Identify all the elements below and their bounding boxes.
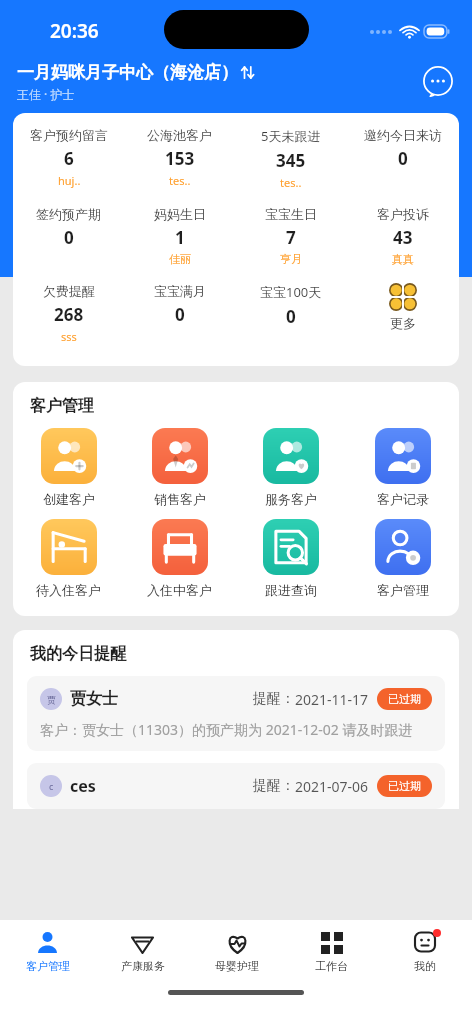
staticText: 贾 [47,694,56,705]
staticText: 153 [165,147,195,170]
staticText: 母婴护理 [215,959,259,973]
staticText: 邀约今日来访 [364,127,442,143]
staticText: 20:36 [50,18,99,44]
staticText: 2021-07-06 [295,777,369,796]
button[interactable]: 工作台 [284,920,378,982]
staticText: 宝宝100天 [260,283,322,301]
button[interactable]: 入住中客户 [124,519,235,598]
staticText: 客户管理 [30,396,94,416]
button[interactable]: 创建客户 [13,428,124,507]
staticText: 更多 [390,315,416,331]
button[interactable]: 产康服务 [95,920,190,982]
staticText: 提醒： [253,777,295,795]
staticText: 妈妈生日 [154,206,206,222]
staticText: 43 [393,226,413,249]
staticText: 亨月 [280,252,302,266]
staticText: 宝宝满月 [154,283,206,299]
staticText: ces [70,775,96,797]
staticText: 客户预约留言 [30,127,108,143]
button[interactable]: 公海池客户 [147,127,212,188]
button[interactable]: 销售客户 [124,428,235,507]
staticText: 2021-11-17 [295,690,369,709]
button[interactable]: 贾 [27,676,445,751]
button[interactable]: 签约预产期 [36,206,101,267]
staticText: 一月妈咪月子中心（海沧店） [17,62,238,83]
staticText: 已过期 [388,692,421,706]
staticText: 客户投诉 [377,206,429,222]
staticText: 服务客户 [265,491,317,507]
staticText: 提醒： [253,690,295,708]
staticText: 欠费提醒 [43,283,95,299]
staticText: 0 [286,305,296,328]
staticText: sss [61,329,77,344]
button[interactable]: 欠费提醒 [43,283,95,344]
button[interactable]: c [27,763,445,809]
button[interactable]: 母婴护理 [190,920,284,982]
button[interactable]: 妈妈生日 [154,206,206,266]
staticText: 客户：贾女士（11303）的预产期为 2021-12-02 请及时跟进 [40,720,413,739]
staticText: 1 [175,226,185,249]
staticText: 客户管理 [26,959,70,973]
button[interactable]: 宝宝100天 [260,283,322,346]
staticText: 客户记录 [377,491,429,507]
button[interactable]: 5天未跟进 [261,127,321,190]
staticText: 345 [276,149,306,172]
staticText: 已过期 [388,779,421,793]
staticText: 产康服务 [121,959,165,973]
staticText: huj.. [58,173,81,188]
button[interactable]: 更多 [347,283,459,331]
button[interactable]: 邀约今日来访 [364,127,442,188]
staticText: 跟进查询 [265,582,317,598]
button[interactable]: 宝宝生日 [265,206,317,266]
staticText: 待入住客户 [36,582,101,598]
button[interactable]: 跟进查询 [235,519,347,598]
staticText: 王佳 · 护士 [17,86,75,102]
staticText: 入住中客户 [147,582,212,598]
staticText: 7 [286,226,296,249]
staticText: 5天未跟进 [261,127,321,145]
staticText: tes.. [169,173,191,188]
button[interactable]: 服务客户 [235,428,347,507]
staticText: 我的 [414,959,436,973]
staticText: 佳丽 [169,252,191,266]
staticText: 创建客户 [43,491,95,507]
staticText: 我的今日提醒 [30,644,126,664]
button[interactable]: 客户预约留言 [30,127,108,188]
staticText: 签约预产期 [36,206,101,222]
staticText: c [49,780,54,792]
button[interactable]: 宝宝满月 [154,283,206,344]
staticText: tes.. [280,175,302,190]
staticText: 销售客户 [154,491,206,507]
button[interactable]: 客户记录 [347,428,459,507]
button[interactable]: 待入住客户 [13,519,124,598]
button[interactable]: 消息 [421,65,455,99]
staticText: 客户管理 [377,582,429,598]
staticText: 真真 [392,252,414,266]
staticText: 宝宝生日 [265,206,317,222]
staticText: 6 [64,147,74,170]
staticText: 0 [175,303,185,326]
other: 切换门店 [240,65,255,80]
staticText: 工作台 [315,959,348,973]
staticText: 0 [64,226,74,249]
button[interactable]: 我的 [378,920,472,982]
staticText: 268 [54,303,84,326]
staticText: 0 [398,147,408,170]
button[interactable]: 客户管理 [0,920,95,982]
button[interactable]: 客户管理 [347,519,459,598]
staticText: 公海池客户 [147,127,212,143]
staticText: 贾女士 [70,689,118,709]
button[interactable]: 客户投诉 [377,206,429,266]
